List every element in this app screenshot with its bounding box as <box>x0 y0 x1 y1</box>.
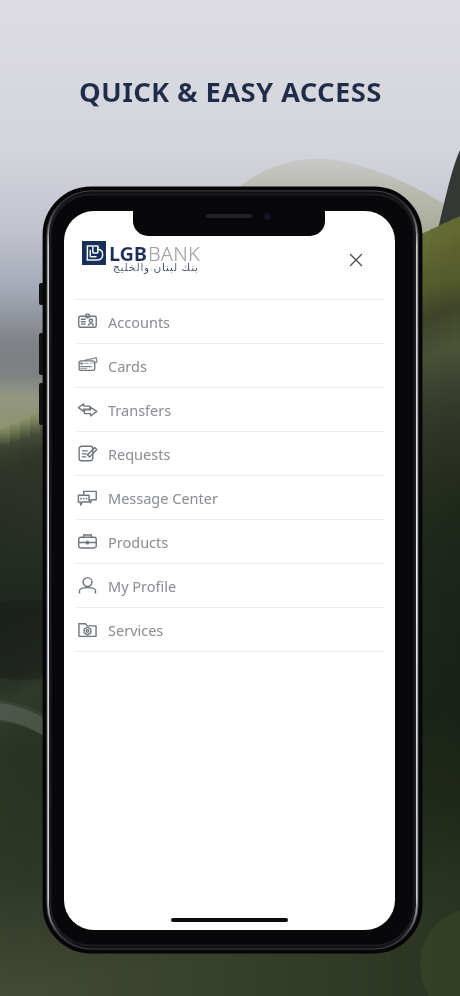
button[interactable]: Close <box>336 240 376 280</box>
staticText: QUICK & EASY ACCESS <box>79 73 382 110</box>
button[interactable]: Message Center <box>64 476 395 519</box>
button[interactable]: Cards <box>64 344 395 387</box>
staticText: Message Center <box>108 488 218 508</box>
staticText: Services <box>108 620 164 640</box>
staticText: Transfers <box>108 400 172 420</box>
button[interactable]: Transfers <box>64 388 395 431</box>
staticText: Accounts <box>108 312 171 332</box>
button[interactable]: My Profile <box>64 564 395 607</box>
staticText: Requests <box>108 444 171 464</box>
button[interactable]: Services <box>64 608 395 651</box>
staticText: BANK <box>148 240 200 267</box>
staticText: بنك لبنان والخليج <box>113 260 199 274</box>
staticText: LGB <box>109 240 147 267</box>
staticText: Cards <box>108 356 147 376</box>
staticText: My Profile <box>108 576 177 596</box>
button[interactable]: Requests <box>64 432 395 475</box>
staticText: Products <box>108 532 169 552</box>
button[interactable]: Accounts <box>64 300 395 343</box>
button[interactable]: Products <box>64 520 395 563</box>
